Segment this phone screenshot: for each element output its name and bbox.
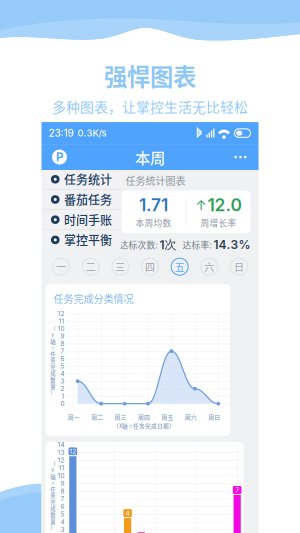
staticText: 周五: [161, 413, 173, 421]
button[interactable]: 二: [81, 257, 100, 276]
staticText: 4: [126, 510, 130, 516]
staticText: Y: [51, 333, 54, 337]
staticText: 六: [204, 259, 214, 274]
staticText: 12: [57, 457, 64, 463]
staticText: 4: [60, 371, 64, 376]
staticText: 7: [60, 496, 64, 501]
staticText: 9: [60, 333, 64, 339]
staticText: 2: [60, 386, 64, 391]
staticText: 二: [86, 259, 96, 274]
staticText: 达标率:: [176, 238, 213, 251]
staticText: （: [50, 326, 55, 331]
staticText: 多种图表，让掌控生活无比轻松: [52, 96, 248, 116]
staticText: 务: [50, 358, 55, 363]
staticText: 11: [58, 318, 64, 324]
staticText: 量: [50, 519, 55, 524]
staticText: 5: [60, 511, 64, 517]
staticText: （: [50, 461, 55, 466]
staticText: 3: [60, 527, 64, 532]
staticText: 完: [50, 500, 55, 505]
staticText: 四: [145, 259, 155, 274]
staticText: 14.3%: [213, 237, 250, 252]
button[interactable]: Menu: [46, 144, 72, 170]
staticText: 周增长率: [200, 216, 236, 229]
staticText: 12: [69, 448, 76, 454]
staticText: 7: [60, 348, 64, 354]
staticText: 1.71: [139, 195, 168, 216]
staticText: 成: [50, 506, 55, 511]
staticText: 11: [58, 465, 64, 471]
button[interactable]: 掌控平衡: [44, 230, 121, 250]
staticText: 三: [115, 259, 125, 274]
staticText: 周二: [91, 413, 103, 421]
staticText: 0.3K/s: [73, 127, 106, 139]
staticText: 掌控平衡: [64, 231, 112, 249]
staticText: P: [56, 150, 63, 164]
staticText: 周四: [138, 413, 150, 421]
staticText: 14: [57, 442, 64, 447]
staticText: 成: [50, 371, 55, 376]
staticText: 23:19: [48, 127, 73, 139]
staticText: 3: [60, 378, 64, 384]
staticText: 日: [234, 259, 244, 274]
staticText: 周一: [68, 413, 80, 421]
staticText: 1: [61, 393, 64, 399]
staticText: 番茄任务: [64, 191, 112, 208]
staticText: 10: [57, 473, 64, 478]
staticText: 13: [57, 450, 64, 455]
staticText: 数: [50, 377, 55, 382]
staticText: 12.0: [207, 195, 241, 216]
staticText: 0: [60, 401, 64, 406]
button[interactable]: 三: [111, 257, 130, 276]
staticText: ↑: [195, 197, 206, 213]
staticText: 轴: [50, 474, 55, 479]
staticText: 完: [50, 365, 55, 369]
staticText: =: [51, 345, 54, 350]
staticText: 一: [56, 259, 66, 274]
staticText: 任务完成分类情况: [53, 291, 133, 306]
staticText: 任务统计: [64, 171, 112, 188]
staticText: 6: [60, 356, 64, 361]
staticText: 时间手账: [64, 211, 112, 228]
staticText: 五: [175, 259, 185, 274]
staticText: 数: [50, 513, 55, 517]
staticText: 轴: [50, 339, 55, 344]
staticText: 10: [57, 326, 64, 331]
staticText: 7: [235, 487, 239, 493]
staticText: ）: [50, 390, 55, 395]
staticText: 周六: [185, 413, 197, 421]
button[interactable]: 六: [200, 257, 219, 276]
staticText: 强悍图表: [104, 59, 196, 92]
staticText: 12: [57, 311, 64, 316]
staticText: （X轴 = 任务完成日期）: [113, 422, 175, 430]
staticText: 9: [60, 481, 64, 486]
staticText: 任: [50, 352, 55, 357]
staticText: 任务统计图表: [125, 173, 185, 188]
staticText: 本周均数: [136, 216, 172, 229]
button[interactable]: 番茄任务: [44, 190, 121, 210]
staticText: 本周: [135, 146, 165, 168]
staticText: 8: [60, 488, 64, 494]
staticText: 周三: [115, 413, 127, 421]
staticText: 4: [60, 519, 64, 525]
button[interactable]: 四: [140, 257, 159, 276]
button[interactable]: 一: [51, 257, 70, 276]
staticText: 量: [50, 384, 55, 389]
button[interactable]: 五: [170, 257, 189, 276]
staticText: 务: [50, 493, 55, 498]
staticText: 1次: [159, 237, 176, 252]
staticText: 任: [50, 487, 55, 492]
button[interactable]: 任务统计: [44, 169, 121, 190]
staticText: 8: [60, 341, 64, 346]
button[interactable]: 时间手账: [44, 210, 121, 230]
staticText: Y: [51, 468, 54, 473]
button[interactable]: 日: [229, 257, 248, 276]
staticText: =: [51, 481, 54, 485]
staticText: ）: [50, 525, 55, 530]
staticText: 6: [60, 504, 64, 509]
staticText: 5: [60, 363, 64, 369]
staticText: 周日: [208, 413, 220, 421]
staticText: 达标次数:: [119, 238, 159, 251]
button[interactable]: More: [227, 144, 253, 170]
